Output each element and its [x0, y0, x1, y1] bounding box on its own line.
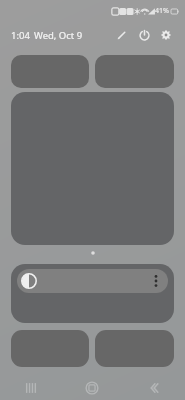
button[interactable]: Quick setting tile [11, 330, 89, 367]
button[interactable]: Recent apps [0, 375, 61, 400]
button[interactable]: Quick setting tile [11, 55, 89, 88]
button[interactable]: Quick setting tile [95, 55, 174, 88]
button[interactable]: Home [61, 375, 123, 400]
button[interactable]: Power [133, 24, 155, 46]
staticText: 1:04 [11, 29, 30, 42]
button[interactable]: Brightness [17, 269, 168, 293]
button[interactable]: Quick settings panel [11, 92, 174, 245]
button[interactable]: Settings [155, 24, 177, 46]
button[interactable]: Quick setting tile [95, 330, 174, 367]
staticText: Wed, Oct 9 [34, 29, 83, 42]
button[interactable]: Back [123, 375, 185, 400]
staticText: 41% [155, 6, 169, 16]
button[interactable]: Edit tiles [111, 24, 133, 46]
